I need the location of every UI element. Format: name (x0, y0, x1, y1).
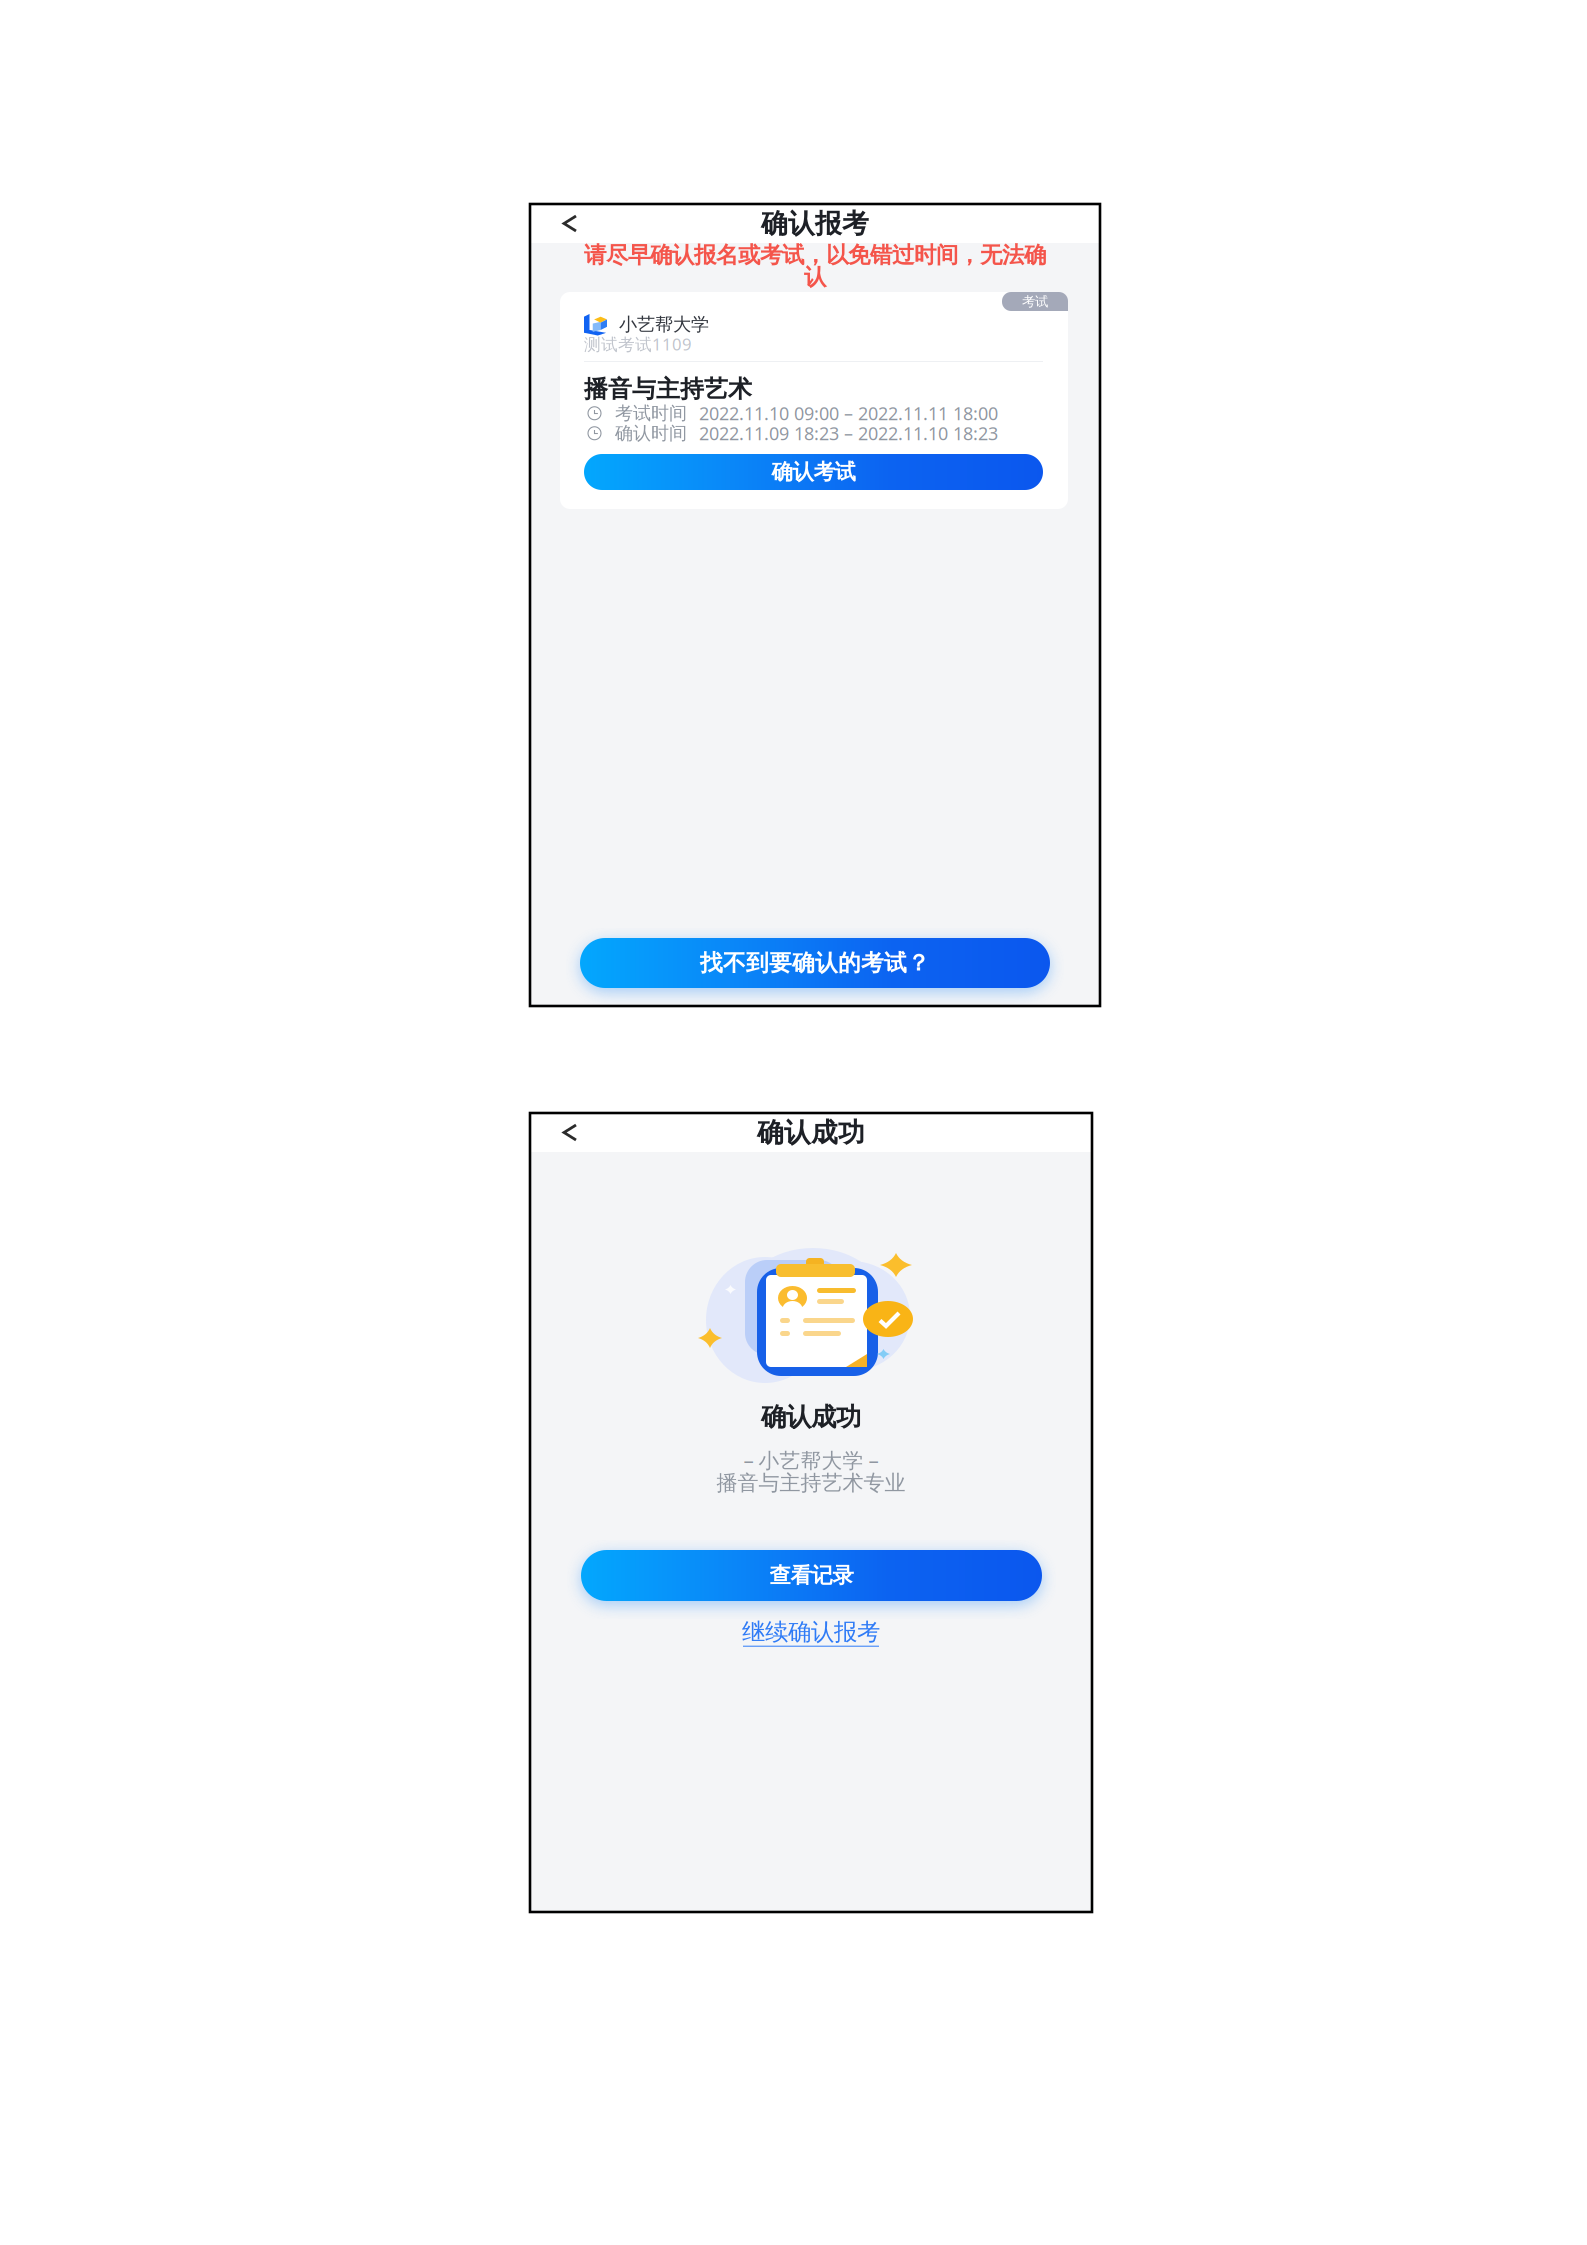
staticText: 考试时间 (615, 402, 687, 425)
staticText: 播音与主持艺术专业 (716, 1470, 905, 1496)
staticText: 找不到要确认的考试？ (700, 949, 930, 977)
staticText: 查看记录 (769, 1562, 853, 1589)
staticText: – 小艺帮大学 – (743, 1446, 878, 1474)
staticText: 小艺帮大学 (619, 313, 709, 336)
staticText: 认 (804, 263, 826, 291)
button[interactable]: 继续确认报考 (732, 1612, 890, 1652)
button[interactable]: Back (530, 1113, 592, 1152)
staticText: 继续确认报考 (742, 1617, 880, 1647)
staticText: 测试考试1109 (584, 333, 692, 355)
staticText: 2022.11.09 18:23 – 2022.11.10 18:23 (699, 421, 998, 445)
staticText: 确认报考 (761, 207, 869, 240)
staticText: 请尽早确认报名或考试，以免错过时间，无法确 (584, 241, 1046, 269)
staticText: 2022.11.10 09:00 – 2022.11.11 18:00 (699, 401, 998, 425)
button[interactable]: 找不到要确认的考试？ (580, 938, 1050, 988)
staticText: 确认成功 (757, 1116, 865, 1149)
staticText: 确认时间 (615, 422, 687, 445)
staticText: 确认成功 (761, 1401, 861, 1433)
staticText: 确认考试 (771, 459, 855, 485)
button[interactable]: 查看记录 (581, 1550, 1042, 1601)
staticText: 播音与主持艺术 (584, 374, 752, 404)
button[interactable]: 确认考试 (584, 454, 1043, 490)
staticText: 考试 (1022, 293, 1048, 310)
button[interactable]: Back (530, 204, 592, 243)
